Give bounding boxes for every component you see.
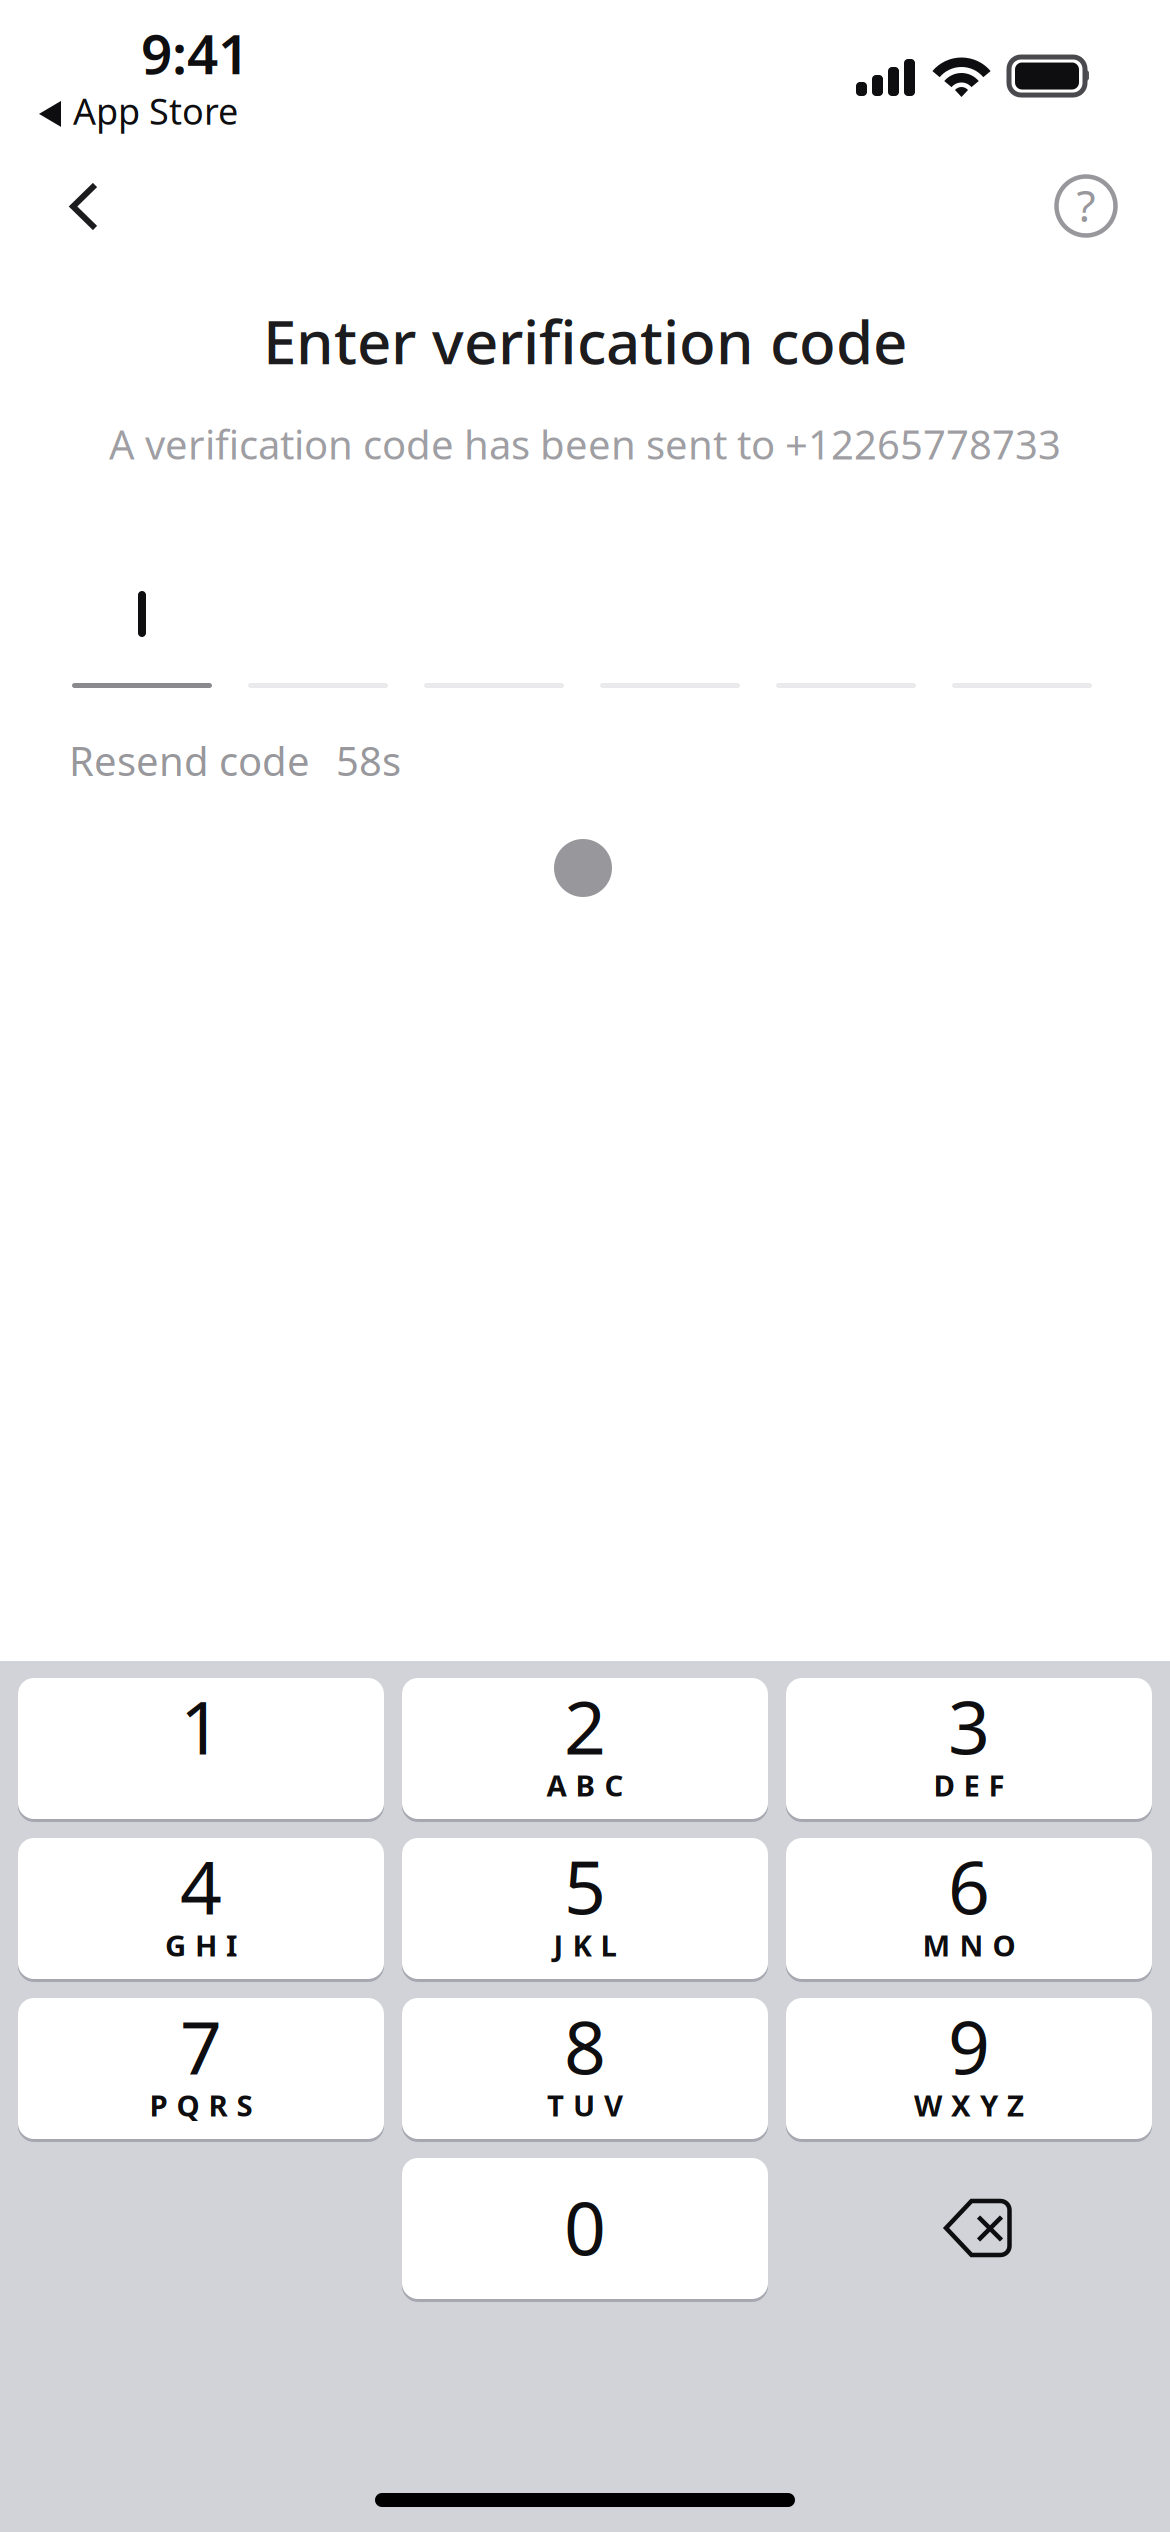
- staticText: 3: [948, 1677, 990, 1775]
- button[interactable]: 6: [786, 1838, 1152, 1979]
- staticText: K: [572, 1925, 591, 1964]
- button[interactable]: 9: [786, 1998, 1152, 2139]
- button[interactable]: 4: [18, 1838, 384, 1979]
- button[interactable]: Resend code: [69, 734, 310, 787]
- staticText: E: [963, 1765, 979, 1804]
- button[interactable]: Verification code: [72, 591, 1092, 688]
- staticText: App Store: [73, 87, 238, 135]
- staticText: S: [236, 2085, 252, 2124]
- staticText: X: [951, 2085, 971, 2124]
- staticText: 7: [180, 1997, 222, 2095]
- button[interactable]: 8: [402, 1998, 768, 2139]
- staticText: R: [208, 2085, 227, 2124]
- staticText: 58s: [336, 734, 401, 787]
- staticText: T: [547, 2085, 564, 2124]
- button[interactable]: 1: [18, 1678, 384, 1819]
- staticText: 1: [180, 1677, 222, 1775]
- staticText: Q: [176, 2085, 199, 2124]
- staticText: 8: [564, 1997, 606, 2095]
- staticText: A verification code has been sent to +12…: [109, 417, 1061, 470]
- staticText: O: [992, 1925, 1015, 1964]
- staticText: Y: [980, 2085, 998, 2124]
- button[interactable]: 3: [786, 1678, 1152, 1819]
- button[interactable]: Help: [1032, 152, 1140, 260]
- staticText: A: [546, 1765, 566, 1804]
- button[interactable]: 5: [402, 1838, 768, 1979]
- button[interactable]: 7: [18, 1998, 384, 2139]
- staticText: ?: [1076, 176, 1095, 234]
- staticText: M: [922, 1925, 950, 1964]
- staticText: Enter verification code: [263, 301, 907, 381]
- staticText: 5: [564, 1837, 606, 1935]
- staticText: Z: [1007, 2085, 1024, 2124]
- button[interactable]: 0: [402, 2158, 768, 2299]
- staticText: Resend code: [69, 734, 310, 787]
- staticText: H: [195, 1925, 217, 1964]
- staticText: P: [149, 2085, 167, 2124]
- staticText: 9: [948, 1997, 990, 2095]
- staticText: 0: [564, 2178, 606, 2276]
- staticText: 9:41: [141, 17, 249, 89]
- staticText: 2: [564, 1677, 606, 1775]
- staticText: I: [226, 1925, 237, 1964]
- staticText: N: [959, 1925, 983, 1964]
- button[interactable]: Back: [34, 156, 134, 257]
- staticText: L: [600, 1925, 616, 1964]
- staticText: V: [604, 2085, 623, 2124]
- staticText: 6: [948, 1837, 990, 1935]
- staticText: W: [914, 2085, 942, 2124]
- staticText: G: [165, 1925, 186, 1964]
- staticText: U: [573, 2085, 595, 2124]
- button[interactable]: Delete: [786, 2158, 1152, 2299]
- staticText: D: [933, 1765, 954, 1804]
- staticText: C: [604, 1765, 623, 1804]
- button[interactable]: 2: [402, 1678, 768, 1819]
- staticText: J: [553, 1925, 563, 1964]
- staticText: B: [575, 1765, 595, 1804]
- staticText: F: [988, 1765, 1004, 1804]
- staticText: 4: [180, 1837, 222, 1935]
